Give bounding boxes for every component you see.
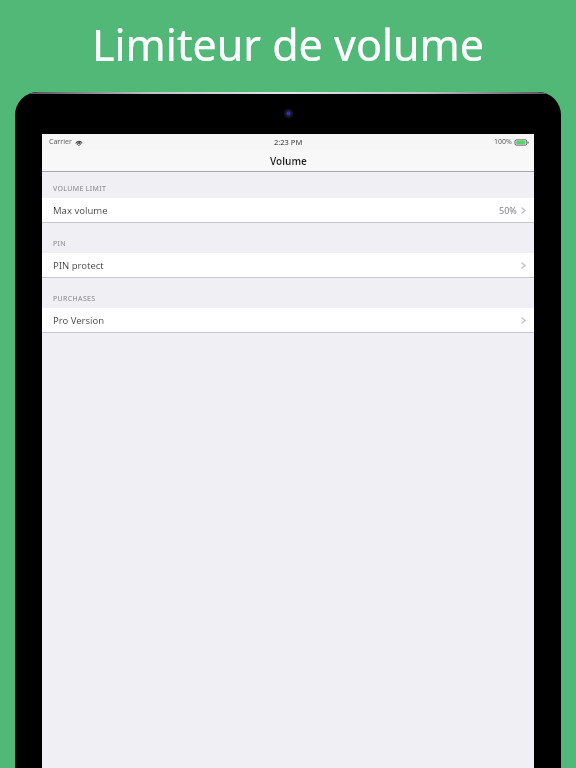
- staticText: 2:23 PM: [274, 137, 303, 147]
- button[interactable]: Pro Version: [42, 308, 534, 332]
- staticText: VOLUME LIMIT: [53, 184, 107, 194]
- staticText: Volume: [270, 154, 307, 168]
- staticText: Carrier: [49, 137, 72, 147]
- other: Open: [521, 206, 526, 215]
- button[interactable]: Max volume: [42, 198, 534, 222]
- staticText: 100%: [494, 137, 512, 147]
- staticText: PIN protect: [53, 259, 104, 272]
- staticText: Max volume: [53, 204, 108, 217]
- staticText: Limiteur de volume: [0, 15, 576, 74]
- staticText: PIN: [53, 239, 66, 249]
- staticText: PURCHASES: [53, 294, 96, 304]
- other: Open: [521, 316, 526, 325]
- staticText: Pro Version: [53, 314, 105, 327]
- staticText: 50%: [499, 204, 517, 216]
- other: Open: [521, 261, 526, 270]
- button[interactable]: PIN protect: [42, 253, 534, 277]
